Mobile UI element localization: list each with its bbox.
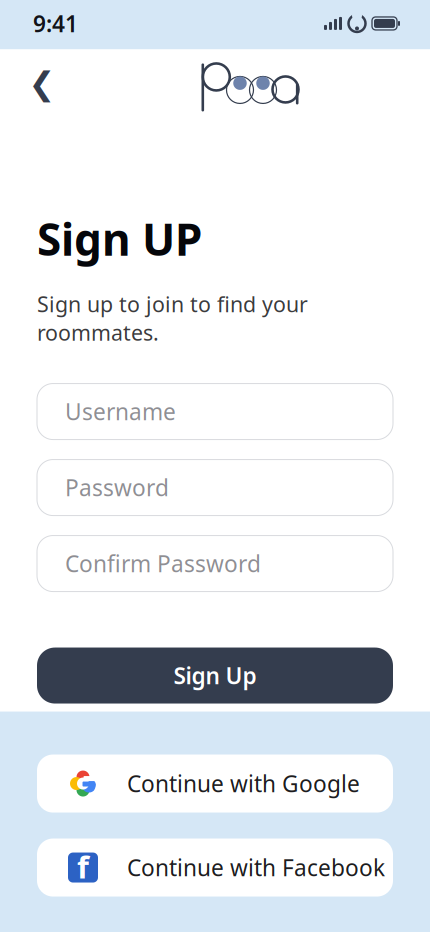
staticText: Sign up to join to find your roommates. <box>37 290 308 347</box>
staticText: Password <box>65 472 169 503</box>
staticText: Sign UP <box>37 209 202 268</box>
staticText: Confirm Password <box>65 548 261 579</box>
staticText: 9:41 <box>33 8 78 38</box>
staticText: f <box>77 846 89 887</box>
staticText: Sign Up <box>173 660 256 691</box>
button[interactable]: Back <box>20 61 64 105</box>
staticText: ❮ <box>28 65 55 102</box>
staticText: Continue with Google <box>127 768 360 799</box>
staticText: Continue with Facebook <box>127 852 385 883</box>
button[interactable]: Continue with Google <box>37 754 393 812</box>
staticText: Username <box>65 396 176 427</box>
button[interactable]: f <box>37 838 393 896</box>
button[interactable]: Sign Up <box>37 647 393 703</box>
